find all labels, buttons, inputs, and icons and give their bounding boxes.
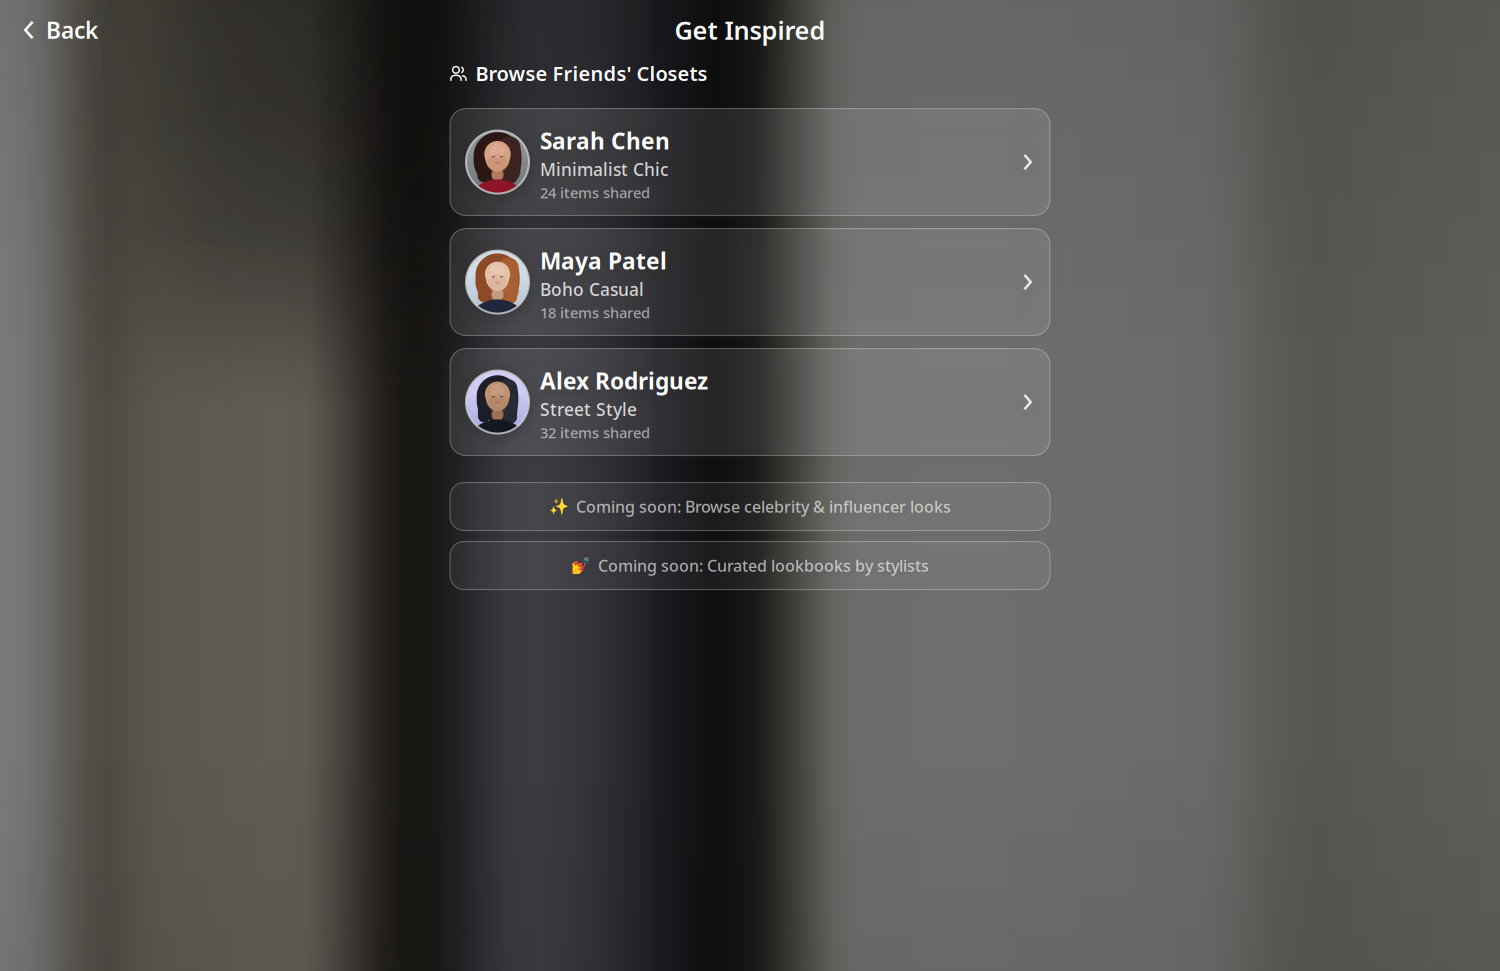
staticText: Maya Patel <box>540 246 667 276</box>
staticText: Street Style <box>540 398 637 421</box>
button[interactable]: Alex Rodriguez <box>450 349 1050 456</box>
staticText: Coming soon: Browse celebrity & influenc… <box>576 496 951 517</box>
staticText: Back <box>46 15 98 45</box>
staticText: Alex Rodriguez <box>540 366 708 396</box>
staticText: Boho Casual <box>540 278 644 301</box>
staticText: Sarah Chen <box>540 126 670 156</box>
staticText: 32 items shared <box>540 423 650 442</box>
button[interactable]: Back <box>0 8 122 52</box>
staticText: Coming soon: Curated lookbooks by stylis… <box>598 555 929 576</box>
staticText: Get Inspired <box>674 13 825 47</box>
button[interactable]: Maya Patel <box>450 229 1050 336</box>
staticText: 24 items shared <box>540 183 650 202</box>
button[interactable]: Sarah Chen <box>450 109 1050 216</box>
staticText: ✨ <box>549 497 569 516</box>
staticText: 18 items shared <box>540 303 650 322</box>
staticText: Minimalist Chic <box>540 158 669 181</box>
staticText: 💅 <box>571 556 591 575</box>
staticText: Browse Friends' Closets <box>475 60 707 87</box>
